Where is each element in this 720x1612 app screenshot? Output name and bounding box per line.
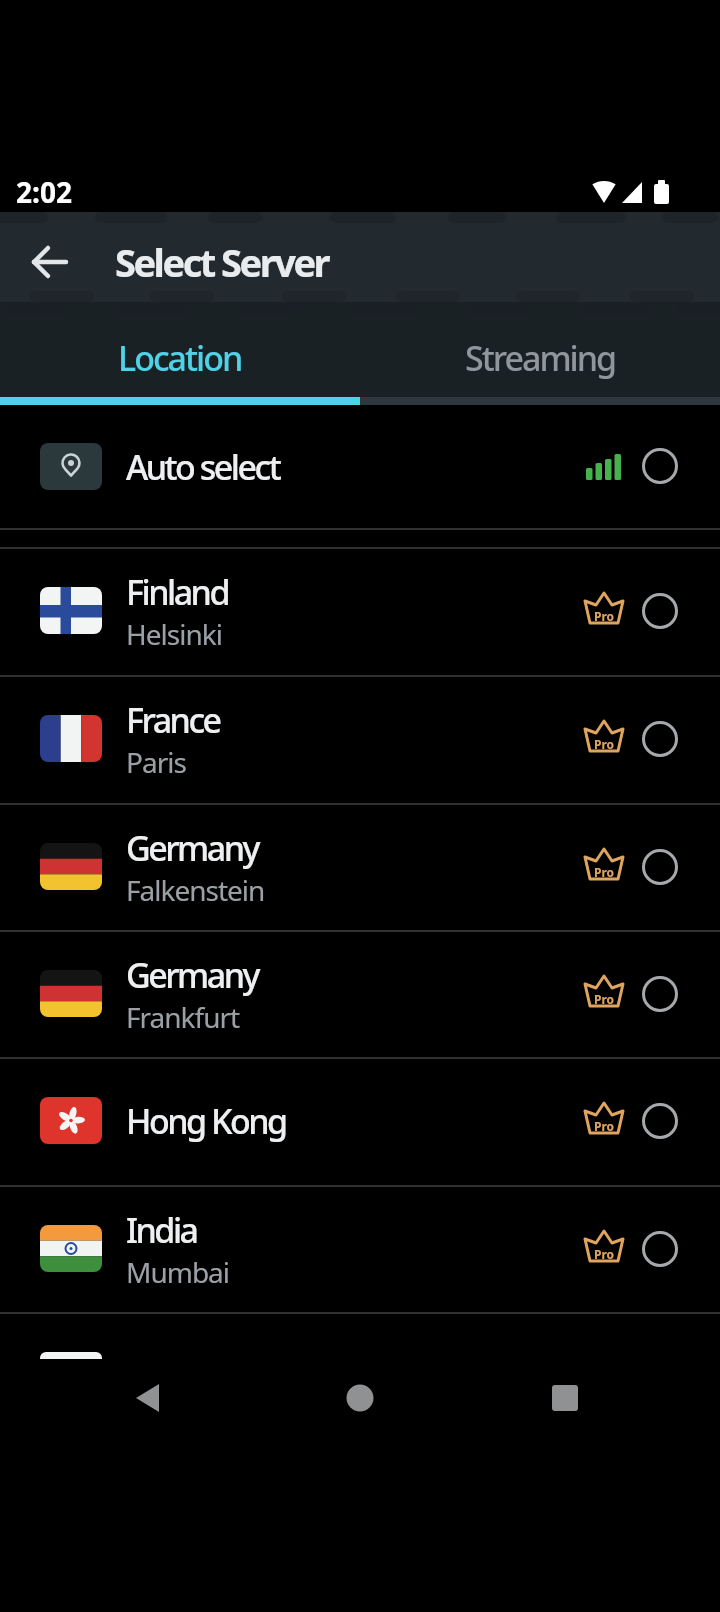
staticText: India	[126, 1207, 197, 1253]
staticText: Hong Kong	[126, 1098, 286, 1144]
staticText: Pro	[594, 1246, 615, 1262]
staticText: Helsinki	[126, 615, 222, 653]
staticText: Pro	[594, 608, 615, 624]
staticText: Pro	[594, 1118, 615, 1134]
staticText: Germany	[126, 952, 259, 998]
button[interactable]: Location	[0, 310, 360, 405]
button[interactable]: France	[0, 675, 720, 803]
button[interactable]: Hong Kong	[0, 1057, 720, 1185]
staticText: 2:02	[16, 173, 72, 211]
staticText: Frankfurt	[126, 998, 240, 1036]
staticText: Paris	[126, 743, 186, 781]
staticText: Pro	[594, 736, 615, 752]
staticText: Finland	[126, 569, 228, 615]
button[interactable]	[336, 1374, 384, 1422]
button[interactable]	[124, 1374, 172, 1422]
button[interactable]: Finland	[0, 547, 720, 675]
staticText: Location	[118, 335, 242, 381]
button[interactable]	[20, 232, 80, 282]
button[interactable]: Streaming	[360, 310, 720, 405]
staticText: France	[126, 697, 220, 743]
staticText: Auto select	[126, 444, 280, 490]
button[interactable]: Auto select	[0, 405, 720, 528]
button[interactable]	[541, 1374, 589, 1422]
staticText: Streaming	[465, 335, 616, 381]
staticText: Mumbai	[126, 1253, 230, 1291]
button[interactable]: India	[0, 1185, 720, 1313]
staticText: Falkenstein	[126, 871, 265, 909]
staticText: Select Server	[115, 236, 329, 288]
staticText: Pro	[594, 864, 615, 880]
button[interactable]: Germany	[0, 803, 720, 931]
staticText: Germany	[126, 825, 259, 871]
button[interactable]: Germany	[0, 930, 720, 1058]
staticText: Pro	[594, 991, 615, 1007]
